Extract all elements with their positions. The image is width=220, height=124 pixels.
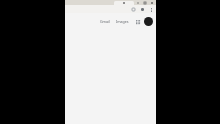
button[interactable]: Profile	[140, 7, 145, 12]
button[interactable]: Close	[150, 1, 154, 5]
button[interactable]	[114, 1, 134, 5]
button[interactable]: Google apps	[134, 18, 141, 25]
button[interactable]: Gmail	[99, 18, 111, 25]
button[interactable]: Extensions	[131, 7, 136, 12]
button[interactable]: More options	[149, 7, 154, 12]
button[interactable]: Minimize	[136, 1, 140, 5]
staticText: Gmail	[100, 19, 110, 24]
button[interactable]: Google Account	[144, 17, 153, 26]
button[interactable]: Maximize	[143, 1, 147, 5]
button[interactable]: Images	[115, 18, 130, 25]
staticText: Images	[116, 19, 129, 24]
